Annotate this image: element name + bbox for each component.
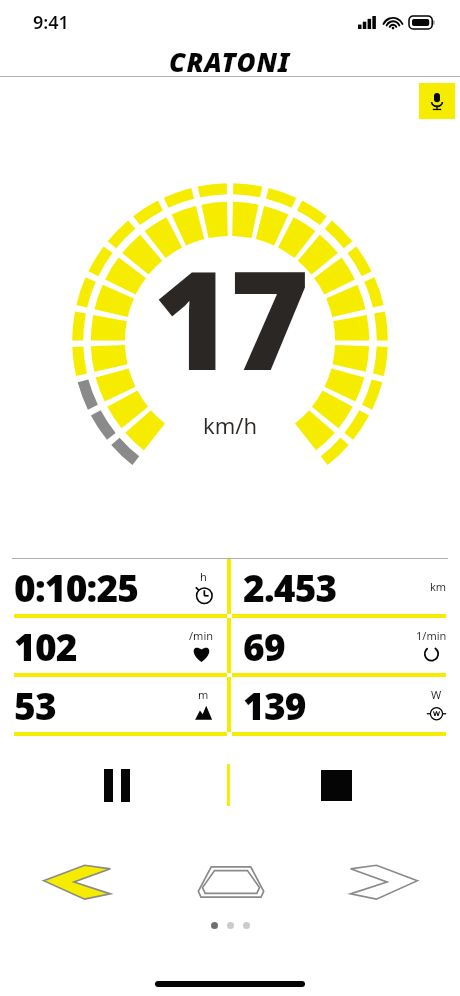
staticText: 69 (243, 621, 285, 671)
staticText: 139 (243, 680, 306, 730)
staticText: 0:10:25 (14, 562, 139, 612)
staticText: 17 (153, 225, 307, 410)
button[interactable]: 139 (232, 677, 460, 732)
button[interactable]: 53 (0, 677, 227, 732)
staticText: 2.453 (243, 562, 337, 612)
staticText: 102 (14, 621, 77, 671)
button[interactable]: Pause (104, 769, 130, 802)
button[interactable]: 102 (0, 618, 227, 673)
button[interactable]: Next screen (307, 854, 460, 910)
staticText: 1/min (416, 628, 447, 643)
staticText: CRATONI (169, 44, 291, 76)
staticText: W (431, 687, 442, 702)
staticText: km/h (203, 410, 258, 440)
staticText: m (198, 687, 209, 702)
staticText: km (430, 579, 447, 594)
button[interactable]: Voice input (419, 83, 455, 119)
staticText: h (200, 569, 207, 584)
button[interactable]: 2.453 (232, 559, 460, 614)
staticText: 9:41 (33, 10, 69, 35)
button[interactable]: 0:10:25 (0, 559, 227, 614)
staticText: /min (189, 628, 214, 643)
button[interactable]: 69 (232, 618, 460, 673)
button[interactable]: Helmet (154, 854, 307, 910)
button[interactable]: Previous screen (0, 854, 154, 910)
staticText: 53 (14, 680, 56, 730)
